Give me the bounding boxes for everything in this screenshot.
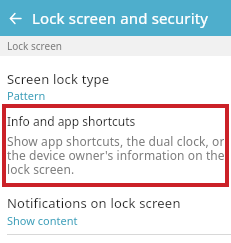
button[interactable]: Screen lock type <box>0 56 231 104</box>
staticText: Info and app shortcuts <box>7 113 136 129</box>
staticText: Show content <box>7 213 78 228</box>
staticText: Show app shortcuts, the dual clock, or t… <box>7 133 224 177</box>
staticText: Screen lock type <box>7 70 110 88</box>
staticText: Notifications on lock screen <box>7 194 181 212</box>
staticText: Lock screen and security <box>32 8 209 28</box>
staticText: Pattern <box>7 88 46 103</box>
staticText: Lock screen <box>7 39 63 53</box>
button[interactable] <box>0 0 30 36</box>
button[interactable]: Notifications on lock screen <box>0 187 231 235</box>
button[interactable]: Info and app shortcuts <box>2 104 229 187</box>
